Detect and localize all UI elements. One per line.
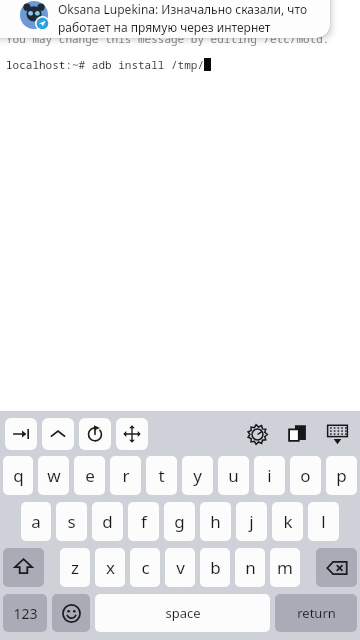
button[interactable]: r	[110, 456, 141, 495]
staticText: 123	[13, 604, 38, 623]
button[interactable]: t	[146, 456, 177, 495]
button[interactable]: e	[74, 456, 105, 495]
button[interactable]: 123	[3, 594, 47, 632]
button[interactable]: Paste	[283, 420, 311, 448]
staticText: s	[67, 510, 76, 533]
staticText: Oksana Lupekina: Изначально сказали, что	[58, 1, 308, 17]
staticText: k	[283, 510, 293, 533]
staticText: v	[176, 556, 185, 579]
button[interactable]: Backspace	[316, 548, 357, 587]
staticText: o	[300, 464, 311, 487]
staticText: e	[85, 464, 95, 487]
button[interactable]: a	[21, 502, 51, 541]
staticText: t	[158, 464, 165, 487]
staticText: g	[174, 510, 185, 533]
button[interactable]: g	[164, 502, 195, 541]
button[interactable]: j	[236, 502, 267, 541]
button[interactable]: n	[235, 548, 265, 587]
button[interactable]: q	[3, 456, 33, 495]
button[interactable]: y	[182, 456, 213, 495]
button[interactable]: x	[95, 548, 125, 587]
button[interactable]: f	[128, 502, 159, 541]
button[interactable]: Oksana Lupekina: Изначально сказали, что	[0, 0, 330, 38]
button[interactable]: l	[308, 502, 339, 541]
button[interactable]: space	[95, 594, 270, 632]
button[interactable]: i	[254, 456, 285, 495]
staticText: w	[47, 464, 61, 487]
button[interactable]: s	[56, 502, 87, 541]
button[interactable]: o	[290, 456, 321, 495]
staticText: работает на прямую через интернет	[58, 19, 271, 35]
button[interactable]: p	[326, 456, 357, 495]
staticText: d	[102, 510, 113, 533]
button[interactable]: return	[275, 594, 357, 632]
button[interactable]: Settings	[243, 420, 271, 448]
staticText: b	[210, 556, 221, 579]
staticText: y	[193, 464, 202, 487]
staticText: m	[277, 556, 293, 579]
button[interactable]: k	[272, 502, 303, 541]
button[interactable]: h	[200, 502, 231, 541]
staticText: return	[297, 604, 336, 622]
staticText: j	[249, 510, 254, 533]
staticText: z	[71, 556, 79, 579]
staticText: p	[336, 464, 347, 487]
button[interactable]: Arrow keys	[116, 418, 148, 450]
button[interactable]: Hide keyboard	[323, 420, 351, 448]
staticText: n	[245, 556, 256, 579]
button[interactable]: c	[130, 548, 160, 587]
staticText: You may change this message by editing /…	[6, 31, 330, 46]
button[interactable]: d	[92, 502, 123, 541]
staticText: h	[210, 510, 221, 533]
staticText: space	[165, 604, 201, 622]
button[interactable]: m	[270, 548, 300, 587]
button[interactable]: v	[165, 548, 195, 587]
button[interactable]: w	[38, 456, 69, 495]
button[interactable]: b	[200, 548, 230, 587]
button[interactable]: Emoji	[52, 594, 90, 632]
staticText: a	[31, 510, 41, 533]
staticText: c	[141, 556, 150, 579]
staticText: u	[228, 464, 239, 487]
button[interactable]: u	[218, 456, 249, 495]
staticText: i	[267, 464, 272, 487]
button[interactable]: Caret up	[42, 418, 74, 450]
button[interactable]: Undo	[79, 418, 111, 450]
button[interactable]: z	[60, 548, 90, 587]
staticText: q	[13, 464, 24, 487]
staticText: localhost:~# adb install /tmp/	[6, 57, 204, 72]
button[interactable]: Shift	[3, 548, 44, 587]
staticText: l	[321, 510, 326, 533]
staticText: f	[141, 510, 147, 533]
staticText: x	[106, 556, 115, 579]
button[interactable]: Tab	[5, 418, 37, 450]
staticText: r	[122, 464, 130, 487]
